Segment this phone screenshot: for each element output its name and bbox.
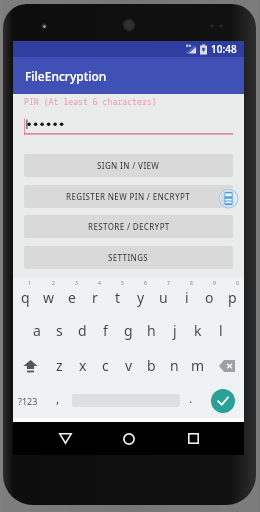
- button[interactable]: REGISTER NEW PIN / ENCRYPT: [24, 185, 233, 208]
- button[interactable]: Paste from clipboard: [218, 188, 239, 209]
- button[interactable]: l: [209, 313, 232, 348]
- button[interactable]: 1: [13, 278, 37, 313]
- button[interactable]: 6: [129, 278, 152, 313]
- button[interactable]: b: [140, 348, 163, 383]
- staticText: RESTORE / DECRYPT: [88, 221, 170, 232]
- button[interactable]: z: [48, 348, 71, 383]
- staticText: ,: [56, 390, 60, 406]
- staticText: 8: [190, 280, 193, 287]
- button[interactable]: RESTORE / DECRYPT: [24, 215, 233, 238]
- staticText: e: [68, 288, 76, 307]
- staticText: 5: [121, 280, 124, 287]
- staticText: p: [228, 288, 237, 307]
- button[interactable]: 8: [175, 278, 198, 313]
- staticText: .: [189, 390, 193, 406]
- staticText: l: [219, 321, 223, 340]
- button[interactable]: 9: [198, 278, 221, 313]
- staticText: z: [56, 356, 63, 375]
- button[interactable]: 2: [37, 278, 60, 313]
- staticText: SETTINGS: [108, 252, 149, 263]
- staticText: y: [137, 288, 145, 307]
- staticText: u: [159, 288, 168, 307]
- button[interactable]: 4: [83, 278, 106, 313]
- staticText: o: [205, 288, 214, 307]
- staticText: v: [125, 356, 133, 375]
- button[interactable]: j: [163, 313, 186, 348]
- staticText: t: [115, 288, 121, 307]
- staticText: d: [78, 321, 87, 340]
- button[interactable]: SIGN IN / VIEW: [24, 154, 233, 177]
- button[interactable]: ,: [43, 383, 72, 418]
- button[interactable]: 5: [106, 278, 129, 313]
- staticText: q: [21, 288, 30, 307]
- button[interactable]: c: [94, 348, 117, 383]
- button[interactable]: x: [71, 348, 94, 383]
- staticText: m: [191, 356, 205, 375]
- button[interactable]: Enter: [211, 389, 235, 413]
- staticText: FileEncryption: [25, 68, 107, 84]
- staticText: a: [33, 321, 41, 340]
- staticText: 0: [236, 280, 239, 287]
- button[interactable]: 3: [60, 278, 83, 313]
- staticText: i: [185, 288, 189, 307]
- staticText: x: [79, 356, 87, 375]
- staticText: c: [102, 356, 109, 375]
- button[interactable]: Back: [33, 422, 97, 455]
- staticText: w: [43, 288, 55, 307]
- button[interactable]: g: [117, 313, 140, 348]
- button[interactable]: h: [140, 313, 163, 348]
- staticText: 6: [144, 280, 147, 287]
- staticText: 7: [167, 280, 170, 287]
- button[interactable]: Home: [97, 422, 161, 455]
- staticText: SIGN IN / VIEW: [97, 160, 160, 171]
- button[interactable]: m: [186, 348, 209, 383]
- staticText: h: [147, 321, 156, 340]
- staticText: 2: [52, 280, 55, 287]
- staticText: 10:48: [211, 42, 237, 56]
- button[interactable]: f: [94, 313, 117, 348]
- button[interactable]: SETTINGS: [24, 246, 233, 269]
- staticText: f: [103, 321, 108, 340]
- button[interactable]: v: [117, 348, 140, 383]
- staticText: b: [147, 356, 156, 375]
- button[interactable]: Backspace: [209, 348, 244, 383]
- button[interactable]: Recents: [161, 422, 225, 455]
- button[interactable]: s: [48, 313, 71, 348]
- button[interactable]: ?123: [13, 383, 43, 418]
- staticText: 4: [98, 280, 101, 287]
- staticText: ?123: [18, 395, 38, 407]
- staticText: s: [56, 321, 63, 340]
- button[interactable]: 7: [152, 278, 175, 313]
- button[interactable]: Shift: [13, 348, 48, 383]
- button[interactable]: d: [71, 313, 94, 348]
- staticText: j: [173, 321, 177, 340]
- button[interactable]: .: [180, 383, 202, 418]
- staticText: r: [92, 288, 98, 307]
- button[interactable]: k: [186, 313, 209, 348]
- staticText: g: [124, 321, 133, 340]
- button[interactable]: 0: [221, 278, 244, 313]
- staticText: REGISTER NEW PIN / ENCRYPT: [66, 191, 191, 202]
- staticText: 9: [213, 280, 216, 287]
- button[interactable]: a: [25, 313, 48, 348]
- staticText: 1: [28, 280, 31, 287]
- button[interactable]: n: [163, 348, 186, 383]
- staticText: n: [170, 356, 179, 375]
- staticText: 3: [75, 280, 78, 287]
- staticText: PIN (At least 6 characters): [24, 96, 157, 107]
- staticText: k: [194, 321, 202, 340]
